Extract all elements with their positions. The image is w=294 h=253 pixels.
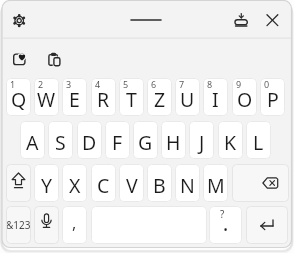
staticText: 5	[123, 78, 129, 90]
staticText: &123	[6, 218, 31, 232]
button[interactable]: L	[246, 121, 271, 159]
button[interactable]: K	[218, 121, 243, 159]
staticText: 8	[207, 78, 213, 90]
staticText: D	[82, 129, 97, 156]
button[interactable]: 2	[34, 78, 59, 116]
staticText: B	[153, 172, 166, 199]
staticText: X	[69, 172, 81, 199]
button[interactable]	[128, 12, 164, 28]
staticText: G	[138, 129, 153, 156]
staticText: ?	[220, 207, 225, 221]
staticText: V	[126, 172, 138, 199]
button[interactable]: 1	[6, 78, 31, 116]
staticText: 9	[236, 78, 242, 90]
button[interactable]: M	[203, 164, 228, 202]
button[interactable]: 9	[232, 78, 257, 116]
staticText: Q	[11, 86, 27, 113]
button[interactable]: H	[161, 121, 186, 159]
button[interactable]: ,	[62, 206, 87, 244]
button[interactable]: 3	[62, 78, 87, 116]
staticText: N	[180, 172, 195, 199]
staticText: 3	[66, 78, 72, 90]
button[interactable]	[9, 48, 31, 70]
button[interactable]: C	[91, 164, 116, 202]
staticText: L	[253, 129, 264, 156]
staticText: .	[223, 211, 229, 237]
staticText: M	[207, 172, 225, 199]
button[interactable]: X	[62, 164, 87, 202]
button[interactable]: B	[147, 164, 172, 202]
button[interactable]	[91, 206, 207, 244]
staticText: Y	[41, 172, 53, 199]
button[interactable]: 0	[260, 78, 285, 116]
button[interactable]	[232, 164, 289, 202]
button[interactable]: F	[105, 121, 130, 159]
button[interactable]: S	[48, 121, 73, 159]
button[interactable]	[8, 9, 31, 32]
staticText: C	[97, 172, 110, 199]
staticText: T	[126, 86, 137, 113]
button[interactable]	[261, 9, 284, 32]
button[interactable]: Y	[34, 164, 59, 202]
staticText: 4	[95, 78, 101, 90]
staticText: ,	[72, 212, 77, 234]
staticText: O	[237, 86, 253, 113]
staticText: S	[55, 129, 66, 156]
staticText: K	[224, 129, 237, 156]
button[interactable]	[43, 48, 65, 70]
staticText: 2	[38, 78, 44, 90]
button[interactable]: 5	[119, 78, 144, 116]
staticText: E	[69, 86, 80, 113]
staticText: F	[112, 129, 123, 156]
button[interactable]: D	[77, 121, 102, 159]
button[interactable]: 8	[203, 78, 228, 116]
button[interactable]: 4	[91, 78, 116, 116]
button[interactable]: &123	[6, 206, 31, 244]
button[interactable]: 6	[147, 78, 172, 116]
button[interactable]: 7	[175, 78, 200, 116]
button[interactable]: N	[175, 164, 200, 202]
staticText: W	[37, 86, 56, 113]
staticText: H	[166, 129, 181, 156]
button[interactable]: ?	[209, 206, 242, 244]
staticText: 1	[10, 78, 16, 90]
button[interactable]	[6, 164, 31, 202]
staticText: Z	[154, 86, 166, 113]
staticText: I	[212, 86, 219, 113]
staticText: 7	[179, 78, 185, 90]
button[interactable]	[34, 206, 59, 244]
staticText: P	[267, 86, 279, 113]
button[interactable]: V	[119, 164, 144, 202]
button[interactable]: A	[20, 121, 45, 159]
staticText: J	[199, 129, 205, 156]
button[interactable]	[229, 9, 252, 32]
staticText: 0	[264, 78, 270, 90]
button[interactable]: G	[133, 121, 158, 159]
button[interactable]	[246, 206, 288, 244]
staticText: A	[26, 129, 39, 156]
staticText: 6	[151, 78, 157, 90]
staticText: R	[97, 86, 110, 113]
button[interactable]: J	[189, 121, 214, 159]
staticText: U	[180, 86, 195, 113]
